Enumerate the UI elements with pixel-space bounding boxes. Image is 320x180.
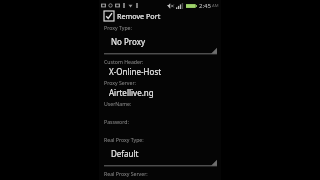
staticText: Remove Port — [117, 11, 161, 21]
button[interactable]: Remove Port — [104, 11, 217, 21]
staticText: Proxy Type: — [104, 24, 132, 31]
staticText: Airtellive.ng — [109, 87, 154, 98]
staticText: 2:45 — [199, 2, 211, 10]
staticText: Real Proxy Type: — [104, 136, 144, 143]
staticText: Proxy Server: — [104, 79, 136, 86]
staticText: Custom Header: — [104, 58, 144, 65]
staticText: X-Online-Host — [109, 66, 162, 77]
staticText: Default — [111, 148, 139, 159]
staticText: Real Proxy Server: — [104, 170, 148, 177]
staticText: No Proxy — [111, 36, 145, 47]
staticText: Password: — [104, 118, 129, 125]
button[interactable]: No Proxy — [104, 31, 217, 56]
staticText: UserName: — [104, 100, 132, 107]
button[interactable]: Default — [104, 143, 217, 168]
staticText: AM — [212, 3, 219, 9]
